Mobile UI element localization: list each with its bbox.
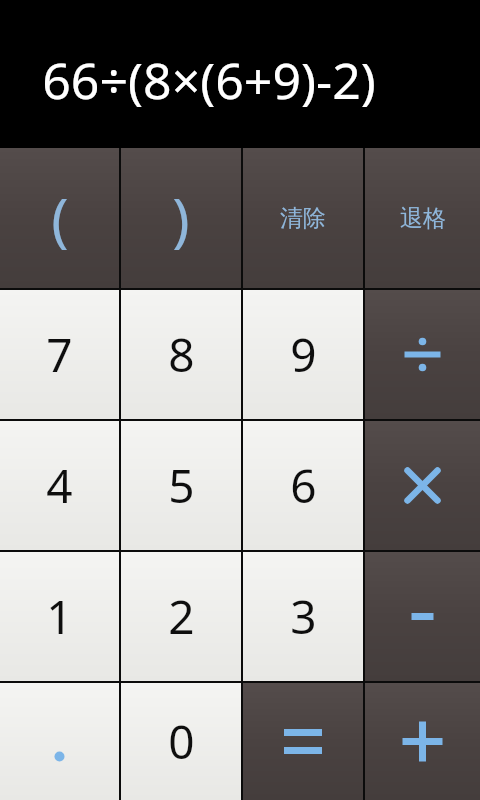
staticText: 7 [46, 323, 73, 386]
button[interactable]: Decimal point [0, 683, 119, 800]
staticText: 0 [168, 710, 195, 773]
button[interactable]: Equals [243, 683, 363, 800]
button[interactable]: 0 [121, 683, 241, 800]
staticText: 8 [168, 323, 195, 386]
button[interactable]: 9 [243, 290, 363, 419]
staticText: 3 [290, 585, 317, 648]
staticText: 1 [46, 585, 73, 648]
staticText: 9 [290, 323, 317, 386]
staticText: ( [51, 179, 69, 258]
staticText: 6 [290, 454, 317, 517]
staticText: 4 [46, 454, 73, 517]
button[interactable]: Multiply [365, 421, 480, 550]
button[interactable]: ( [0, 148, 119, 288]
button[interactable]: 4 [0, 421, 119, 550]
button[interactable]: 1 [0, 552, 119, 681]
button[interactable]: 2 [121, 552, 241, 681]
staticText: 66÷(8×(6+9)-2) [42, 46, 376, 114]
staticText: 清除 [280, 204, 326, 233]
button[interactable]: 5 [121, 421, 241, 550]
button[interactable]: 7 [0, 290, 119, 419]
staticText: ) [172, 179, 190, 258]
button[interactable]: 清除 [243, 148, 363, 288]
button[interactable]: Divide [365, 290, 480, 419]
button[interactable]: 8 [121, 290, 241, 419]
staticText: 5 [168, 454, 195, 517]
staticText: 2 [168, 585, 195, 648]
button[interactable]: 退格 [365, 148, 480, 288]
button[interactable]: 3 [243, 552, 363, 681]
button[interactable]: Plus [365, 683, 480, 800]
staticText: 退格 [400, 204, 446, 233]
button[interactable]: Minus [365, 552, 480, 681]
button[interactable]: 6 [243, 421, 363, 550]
button[interactable]: ) [121, 148, 241, 288]
